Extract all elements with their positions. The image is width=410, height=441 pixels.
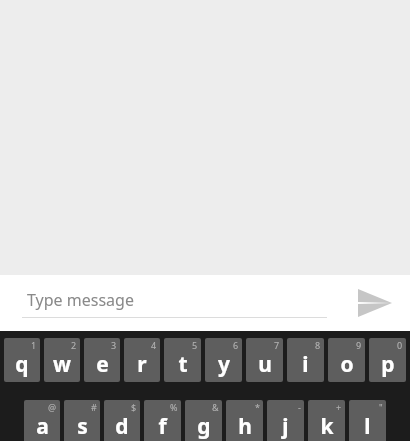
staticText: g [197,412,211,441]
staticText: r [137,350,147,379]
staticText: u [258,350,272,379]
button[interactable]: d [104,400,140,441]
button[interactable]: h [226,400,263,441]
staticText: 7 [274,339,280,351]
staticText: 5 [192,339,198,351]
staticText: o [340,350,354,379]
staticText: & [212,401,219,413]
staticText: 8 [315,339,321,351]
staticText: Type message [27,289,134,311]
staticText: # [91,401,97,413]
staticText: " [379,401,383,413]
button[interactable]: e [84,338,120,382]
button[interactable]: u [246,338,283,382]
button[interactable]: t [164,338,201,382]
staticText: w [53,350,71,379]
button[interactable]: s [64,400,100,441]
button[interactable]: f [144,400,181,441]
button[interactable]: l [349,400,386,441]
staticText: l [364,412,371,441]
button[interactable]: a [24,400,60,441]
staticText: a [36,412,49,441]
button[interactable]: o [328,338,365,382]
button[interactable]: q [4,338,40,382]
staticText: s [77,412,88,441]
button[interactable]: j [267,400,304,441]
staticText: d [115,412,129,441]
staticText: 0 [397,339,403,351]
button[interactable]: y [205,338,242,382]
button[interactable]: g [185,400,222,441]
staticText: @ [48,401,57,413]
staticText: y [218,350,230,379]
button[interactable]: i [287,338,324,382]
button[interactable]: k [308,400,345,441]
button[interactable]: p [369,338,406,382]
staticText: j [282,412,289,441]
staticText: 9 [356,339,362,351]
staticText: - [298,401,301,413]
staticText: k [320,412,334,441]
staticText: i [302,350,309,379]
staticText: 4 [151,339,157,351]
staticText: % [170,401,178,413]
staticText: + [336,401,342,413]
staticText: 6 [233,339,239,351]
staticText: * [255,401,260,413]
button[interactable]: Send [352,280,398,326]
staticText: 2 [71,339,77,351]
staticText: f [158,412,167,441]
staticText: e [96,350,109,379]
staticText: q [15,350,29,379]
staticText: h [238,412,252,441]
staticText: 1 [31,339,37,351]
button[interactable]: Type message [22,289,327,318]
staticText: $ [131,401,137,413]
button[interactable]: w [44,338,80,382]
button[interactable]: r [124,338,160,382]
staticText: p [381,350,395,379]
staticText: 3 [111,339,117,351]
staticText: t [178,350,188,379]
